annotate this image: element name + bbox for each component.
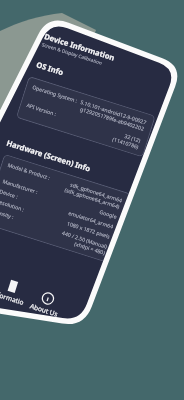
staticText: (11410786) (112, 135, 140, 150)
staticText: Information (0, 289, 28, 310)
button[interactable]: About Us (24, 283, 69, 324)
staticText: 32 (12) (124, 132, 142, 144)
staticText: 5:25 (48, 14, 64, 27)
staticText: 5.10.101-android12-9-00027 (80, 98, 148, 126)
staticText: Google (99, 208, 118, 220)
staticText: Hardware (Screen) Info (5, 137, 92, 173)
staticText: 1080 x 1872 pixels (66, 220, 112, 240)
other: Settings (64, 22, 70, 28)
staticText: API Version : (26, 101, 58, 117)
staticText: (xhdpi = 480) (74, 240, 107, 256)
staticText: Resolution : (0, 197, 26, 213)
staticText: Device Information (43, 30, 117, 63)
staticText: sdk_gphone64_arm64 (70, 181, 123, 203)
staticText: emulator64_arm64 (68, 209, 115, 230)
staticText: Manufacturer : (2, 177, 39, 195)
staticText: (sdk_gphone64_arm64) (64, 186, 121, 210)
staticText: Density : (0, 207, 15, 220)
staticText: OS Info (35, 59, 65, 77)
staticText: Model & Product : (7, 161, 52, 181)
staticText: g1292051789fe-ab9402202 (79, 105, 146, 132)
button[interactable]: Information (0, 271, 33, 313)
staticText: About Us (29, 302, 59, 320)
staticText: Device : (0, 187, 19, 200)
staticText: Operating System : (32, 83, 79, 104)
staticText: 440 / 2.50 (Manual) (61, 229, 109, 250)
staticText: Screen & Display Calibration (41, 41, 103, 67)
